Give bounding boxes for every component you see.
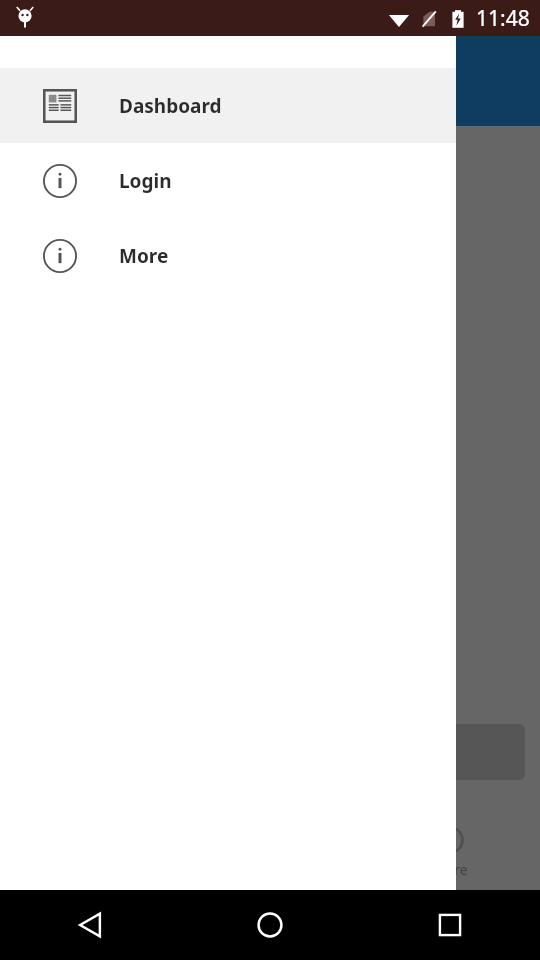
staticText: Login: [119, 168, 172, 194]
button[interactable]: Search: [180, 896, 360, 949]
staticText: Search: [248, 930, 293, 949]
button[interactable]: Dashboard: [0, 68, 456, 143]
staticText: More: [433, 930, 468, 949]
button[interactable]: Back: [63, 898, 117, 952]
button[interactable]: Login: [0, 143, 456, 218]
staticText: More: [433, 860, 468, 879]
button[interactable]: Recent apps: [423, 898, 477, 952]
button[interactable]: Home: [0, 896, 180, 949]
staticText: Dashboard: [119, 93, 222, 119]
button[interactable]: More: [0, 218, 456, 293]
staticText: Home: [70, 930, 110, 949]
button[interactable]: Home: [243, 898, 297, 952]
staticText: 11:48: [476, 4, 530, 33]
staticText: More: [119, 243, 169, 269]
button[interactable]: More: [360, 896, 540, 949]
